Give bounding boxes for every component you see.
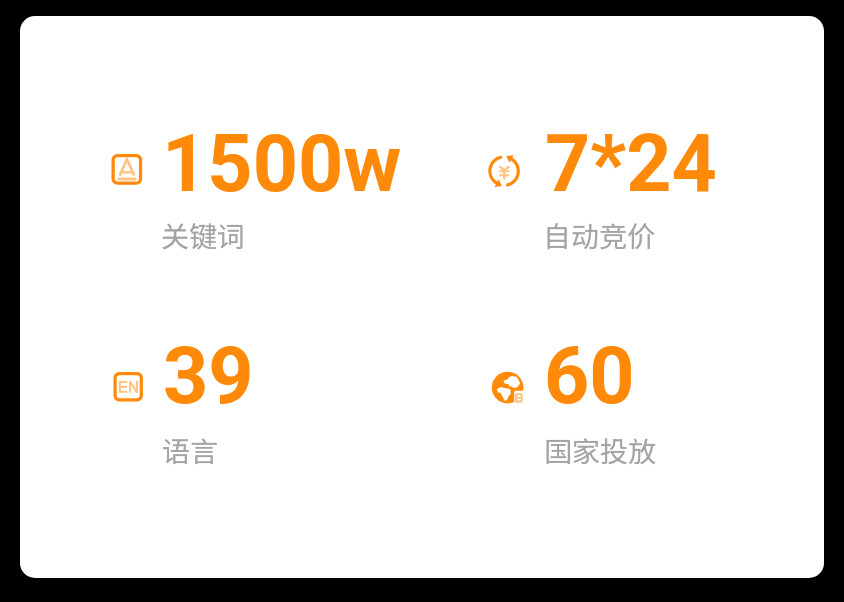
- other: Country delivery: [492, 371, 532, 411]
- staticText: 国家投放: [544, 430, 657, 471]
- staticText: 语言: [162, 430, 219, 471]
- staticText: 7*24: [545, 118, 717, 211]
- staticText: 自动竞价: [543, 215, 656, 256]
- other: Languages: [113, 368, 153, 408]
- staticText: 1500w: [162, 118, 402, 211]
- other: Keywords: [111, 150, 151, 190]
- button[interactable]: Country delivery 60: [466, 329, 822, 499]
- button[interactable]: Keywords 1500w: [85, 108, 441, 278]
- button[interactable]: Languages 39: [87, 326, 443, 496]
- staticText: 39: [163, 330, 254, 423]
- staticText: 60: [544, 330, 635, 423]
- button[interactable]: Auto bidding 7*24: [462, 107, 818, 277]
- other: Auto bidding: [488, 149, 528, 189]
- staticText: 关键词: [161, 215, 246, 256]
